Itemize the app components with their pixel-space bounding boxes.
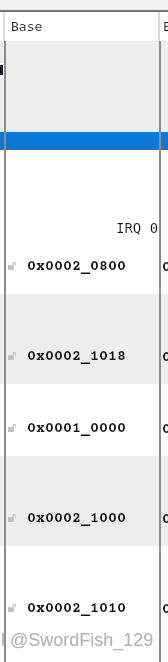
staticText: 0x0002_1010: [27, 600, 126, 617]
staticText: 0x0002_1018: [27, 348, 126, 365]
button[interactable]: Unlocked: [6, 596, 158, 620]
staticText: 0x0002_1000: [27, 510, 126, 527]
other: Unlocked: [8, 604, 16, 612]
button[interactable]: Unlocked: [6, 416, 158, 440]
staticText: 0: [162, 421, 168, 438]
staticText: 0: [162, 349, 168, 366]
button[interactable]: Unlocked: [6, 506, 158, 530]
staticText: 0x0002_0800: [27, 258, 126, 275]
other: Unlocked: [8, 262, 16, 270]
other: Unlocked: [8, 514, 16, 522]
staticText: 0: [162, 511, 168, 528]
staticText: l @SwordFish_129: [1, 630, 154, 650]
staticText: 0x0001_0000: [27, 420, 126, 437]
button[interactable]: Unlocked: [6, 254, 158, 278]
staticText: 0: [162, 259, 168, 276]
staticText: IRQ 0: [116, 220, 159, 236]
staticText: En: [163, 19, 168, 34]
staticText: Base: [11, 19, 43, 34]
other: Unlocked: [8, 424, 16, 432]
other: Unlocked: [8, 352, 16, 360]
button[interactable]: Base: [5, 12, 158, 41]
staticText: 0: [162, 601, 168, 618]
button[interactable]: Unlocked: [6, 344, 158, 368]
